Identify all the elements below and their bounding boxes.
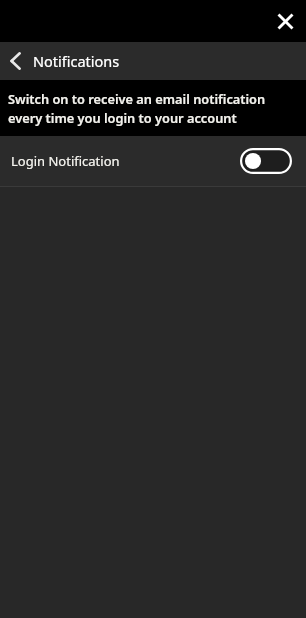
button[interactable]: Login Notification toggle bbox=[240, 148, 292, 174]
staticText: Notifications bbox=[33, 51, 120, 71]
staticText: Login Notification bbox=[11, 152, 120, 170]
button[interactable]: Back bbox=[0, 42, 30, 80]
staticText: Switch on to receive an email notificati… bbox=[8, 90, 266, 127]
button[interactable]: Login Notification bbox=[0, 136, 306, 186]
button[interactable]: Close bbox=[271, 7, 299, 35]
